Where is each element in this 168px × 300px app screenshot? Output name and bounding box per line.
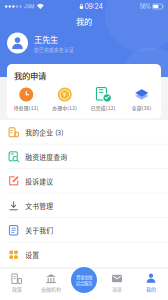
staticText: 金融机构	[41, 285, 61, 293]
button[interactable]: 金融机构	[34, 269, 68, 300]
staticText: 普惠金融	[76, 274, 92, 280]
staticText: 政策	[12, 285, 22, 293]
staticText: 已完成(12)	[91, 104, 116, 111]
button[interactable]: 待处理(12)	[7, 86, 45, 111]
staticText: 文书管理	[25, 201, 53, 211]
button[interactable]: 融资进度查询	[0, 144, 168, 169]
staticText: 我的	[76, 16, 92, 27]
button[interactable]: 王先生	[0, 30, 168, 56]
button[interactable]: 设置	[0, 242, 168, 267]
staticText: 消息	[112, 285, 122, 293]
staticText: 王先生	[34, 33, 58, 45]
staticText: 我的	[146, 285, 156, 293]
button[interactable]: ¥	[45, 86, 84, 111]
staticText: 设置	[25, 250, 39, 260]
staticText: 投诉建议	[25, 176, 53, 186]
button[interactable]: 我的	[134, 269, 168, 300]
staticText: 办理中(12)	[52, 104, 77, 111]
staticText: 关于我们	[25, 225, 53, 235]
staticText: 您已完成实名认证	[34, 46, 74, 53]
staticText: 我的申请	[14, 69, 46, 81]
button[interactable]: 关于我们	[0, 218, 168, 242]
staticText: 全部(36)	[132, 104, 152, 111]
staticText: 综合服务	[76, 280, 92, 286]
staticText: 58%	[139, 3, 150, 10]
button[interactable]: 文书管理	[0, 193, 168, 218]
staticText: 我的企业 (3)	[25, 127, 63, 137]
staticText: JSM	[24, 3, 35, 9]
staticText: 09:24	[85, 2, 104, 11]
staticText: 融资进度查询	[25, 152, 67, 162]
staticText: ¥	[63, 91, 67, 98]
button[interactable]: 普惠金融	[69, 265, 99, 295]
staticText: 待处理(12)	[14, 104, 39, 111]
button[interactable]: 消息	[100, 269, 134, 300]
button[interactable]: 投诉建议	[0, 169, 168, 193]
button[interactable]: 全部(36)	[122, 86, 161, 111]
button[interactable]: 已完成(12)	[84, 86, 122, 111]
button[interactable]: 我的企业 (3)	[0, 120, 168, 144]
button[interactable]: 政策	[0, 269, 34, 300]
